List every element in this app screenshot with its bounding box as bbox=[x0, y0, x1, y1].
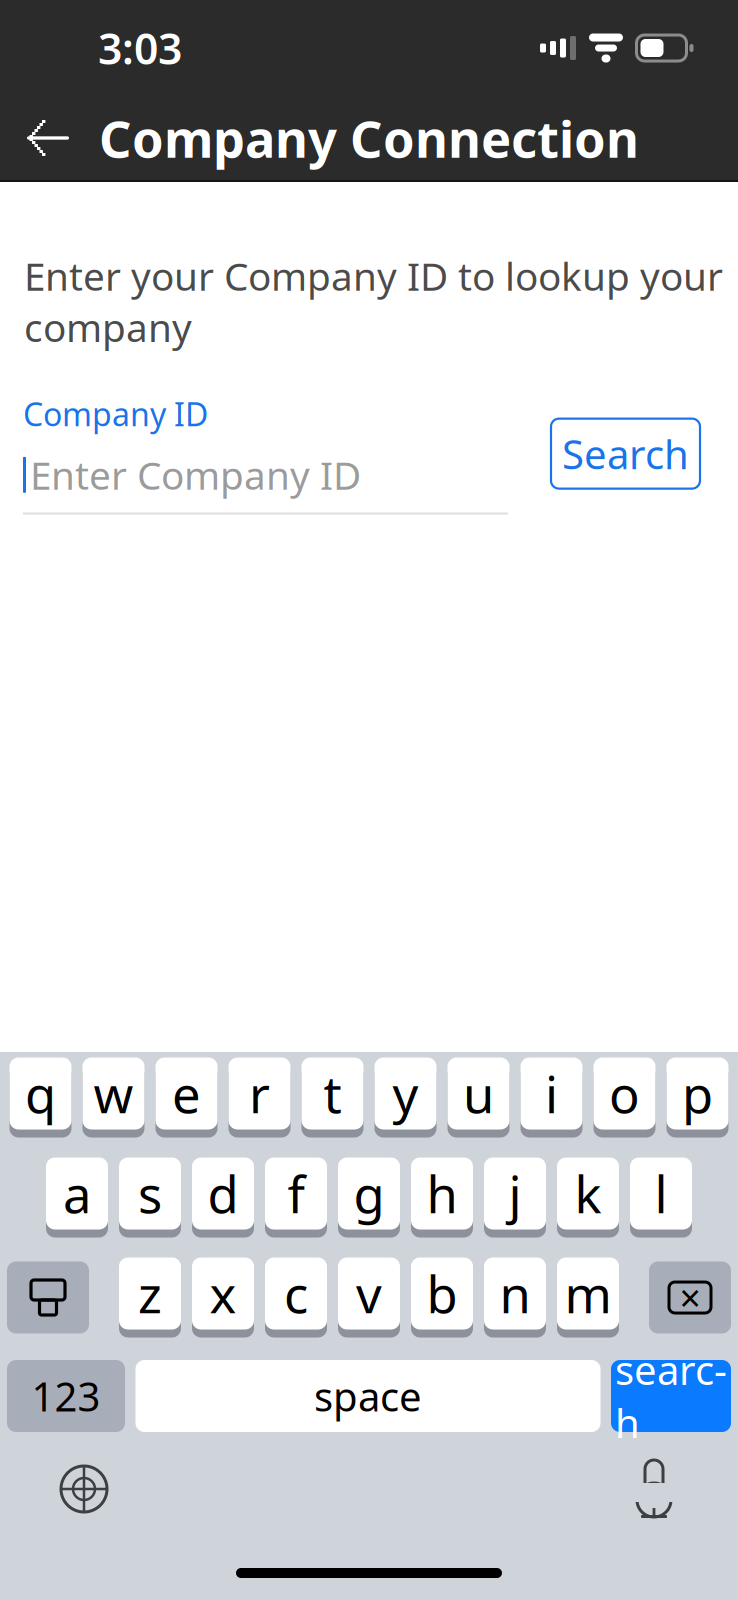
staticText: l bbox=[654, 1160, 667, 1227]
button[interactable]: b bbox=[411, 1260, 473, 1335]
button[interactable]: o bbox=[593, 1060, 655, 1135]
button[interactable]: q bbox=[9, 1060, 71, 1135]
staticText: f bbox=[287, 1160, 304, 1227]
button[interactable]: n bbox=[484, 1260, 546, 1335]
staticText: m bbox=[564, 1260, 611, 1327]
button[interactable]: a bbox=[46, 1160, 108, 1235]
staticText: u bbox=[463, 1060, 494, 1127]
staticText: space bbox=[314, 1369, 422, 1422]
button[interactable]: s bbox=[119, 1160, 181, 1235]
staticText: p bbox=[682, 1060, 713, 1127]
button[interactable]: Delete bbox=[649, 1260, 731, 1335]
button[interactable]: m bbox=[557, 1260, 619, 1335]
staticText: k bbox=[574, 1160, 601, 1227]
button[interactable]: z bbox=[119, 1260, 181, 1335]
staticText: a bbox=[63, 1160, 91, 1227]
button[interactable]: g bbox=[338, 1160, 400, 1235]
button[interactable]: 123 bbox=[7, 1360, 125, 1432]
button[interactable]: r bbox=[228, 1060, 290, 1135]
staticText: o bbox=[609, 1060, 640, 1127]
staticText: c bbox=[284, 1260, 308, 1327]
staticText: Enter Company ID bbox=[30, 449, 361, 500]
staticText: 123 bbox=[31, 1369, 100, 1422]
staticText: b bbox=[426, 1260, 457, 1327]
staticText: Company Connection bbox=[99, 104, 639, 172]
staticText: × bbox=[679, 1273, 700, 1322]
staticText: d bbox=[207, 1160, 238, 1227]
button[interactable]: Search bbox=[551, 419, 700, 489]
staticText: r bbox=[249, 1060, 270, 1127]
staticText: z bbox=[138, 1260, 162, 1327]
button[interactable]: k bbox=[557, 1160, 619, 1235]
button[interactable]: t bbox=[301, 1060, 363, 1135]
button[interactable]: h bbox=[411, 1160, 473, 1235]
staticText: q bbox=[25, 1060, 56, 1127]
staticText: Search bbox=[562, 427, 689, 480]
button[interactable]: space bbox=[135, 1360, 600, 1432]
button[interactable]: Back bbox=[0, 96, 96, 180]
staticText: e bbox=[172, 1060, 201, 1127]
staticText: i bbox=[545, 1060, 558, 1127]
button[interactable]: v bbox=[338, 1260, 400, 1335]
staticText: y bbox=[392, 1060, 418, 1127]
button[interactable]: j bbox=[484, 1160, 546, 1235]
staticText: Company ID bbox=[23, 393, 208, 435]
staticText: x bbox=[209, 1260, 236, 1327]
button[interactable]: Next keyboard bbox=[39, 1452, 129, 1526]
staticText: v bbox=[356, 1260, 382, 1327]
staticText: j bbox=[508, 1160, 521, 1227]
staticText: h bbox=[426, 1160, 457, 1227]
button[interactable]: Shift bbox=[7, 1260, 89, 1335]
button[interactable]: x bbox=[192, 1260, 254, 1335]
button[interactable]: Dictation bbox=[609, 1452, 699, 1526]
button[interactable]: d bbox=[192, 1160, 254, 1235]
button[interactable]: u bbox=[447, 1060, 509, 1135]
button[interactable]: w bbox=[82, 1060, 144, 1135]
staticText: g bbox=[353, 1160, 384, 1227]
staticText: Enter your Company ID to lookup your com… bbox=[24, 250, 723, 353]
button[interactable]: f bbox=[265, 1160, 327, 1235]
button[interactable]: l bbox=[630, 1160, 692, 1235]
button[interactable]: p bbox=[666, 1060, 728, 1135]
button[interactable]: e bbox=[155, 1060, 217, 1135]
staticText: s bbox=[138, 1160, 162, 1227]
staticText: w bbox=[93, 1060, 133, 1127]
button[interactable]: search bbox=[611, 1360, 731, 1432]
button[interactable]: i bbox=[520, 1060, 582, 1135]
button[interactable]: c bbox=[265, 1260, 327, 1335]
staticText: t bbox=[323, 1060, 341, 1127]
button[interactable]: y bbox=[374, 1060, 436, 1135]
staticText: n bbox=[499, 1260, 530, 1327]
staticText: search bbox=[615, 1343, 727, 1449]
staticText: 3:03 bbox=[98, 20, 182, 76]
